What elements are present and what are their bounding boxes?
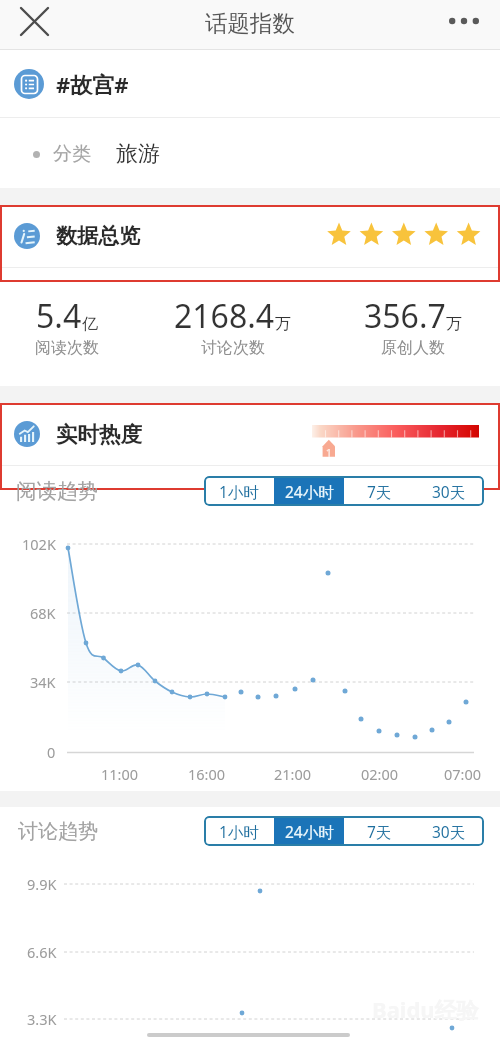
staticText: Baidu经验 bbox=[372, 994, 479, 1024]
staticText: 分类 bbox=[53, 142, 91, 166]
staticText: 数据总览 bbox=[56, 223, 140, 249]
staticText: 万 bbox=[446, 314, 462, 334]
staticText: 30天 bbox=[432, 481, 466, 502]
staticText: 1小时 bbox=[219, 481, 259, 502]
staticText: 阅读趋势 bbox=[16, 478, 98, 504]
staticText: 34K bbox=[30, 672, 56, 692]
staticText: 02:00 bbox=[361, 764, 399, 784]
staticText: 16:00 bbox=[188, 764, 226, 784]
staticText: 话题指数 bbox=[205, 9, 295, 37]
staticText: 102K bbox=[22, 534, 56, 554]
staticText: #故宫# bbox=[56, 69, 129, 99]
staticText: 30天 bbox=[432, 821, 466, 842]
staticText: 原创人数 bbox=[381, 338, 445, 358]
staticText: 讨论趋势 bbox=[18, 819, 98, 844]
staticText: 1 bbox=[325, 445, 333, 460]
staticText: 3.3K bbox=[27, 1009, 57, 1029]
staticText: 讨论次数 bbox=[201, 338, 265, 358]
button[interactable]: 30天 bbox=[414, 476, 484, 506]
staticText: 7天 bbox=[367, 821, 392, 842]
staticText: 356.7 bbox=[364, 294, 446, 338]
staticText: 24小时 bbox=[285, 481, 334, 502]
staticText: 0 bbox=[47, 742, 56, 762]
button[interactable]: 分类 bbox=[0, 118, 500, 190]
button[interactable]: 1小时 bbox=[204, 816, 274, 846]
button[interactable]: 1小时 bbox=[204, 476, 274, 506]
button[interactable]: Close bbox=[10, 0, 58, 42]
staticText: 21:00 bbox=[274, 764, 312, 784]
button[interactable]: 24小时 bbox=[274, 476, 344, 506]
staticText: 万 bbox=[275, 314, 291, 334]
staticText: 5.4 bbox=[36, 294, 82, 338]
staticText: 11:00 bbox=[101, 764, 139, 784]
button[interactable]: 24小时 bbox=[274, 816, 344, 846]
staticText: 68K bbox=[30, 603, 56, 623]
button[interactable]: 实时热度 bbox=[0, 403, 500, 465]
button[interactable]: More options bbox=[444, 0, 484, 42]
staticText: 2168.4 bbox=[174, 294, 275, 338]
staticText: 亿 bbox=[82, 314, 98, 334]
staticText: 7天 bbox=[367, 481, 392, 502]
button[interactable]: #故宫# bbox=[0, 51, 500, 117]
staticText: 07:00 bbox=[444, 764, 482, 784]
button[interactable]: 30天 bbox=[414, 816, 484, 846]
staticText: 6.6K bbox=[27, 942, 57, 962]
button[interactable]: 数据总览 bbox=[0, 205, 500, 267]
button[interactable]: 7天 bbox=[344, 476, 414, 506]
staticText: 旅游 bbox=[116, 140, 160, 168]
staticText: 24小时 bbox=[285, 821, 334, 842]
staticText: 阅读次数 bbox=[35, 338, 99, 358]
button[interactable]: 7天 bbox=[344, 816, 414, 846]
staticText: 实时热度 bbox=[56, 421, 142, 448]
staticText: 1小时 bbox=[219, 821, 259, 842]
staticText: 9.9K bbox=[27, 874, 57, 894]
